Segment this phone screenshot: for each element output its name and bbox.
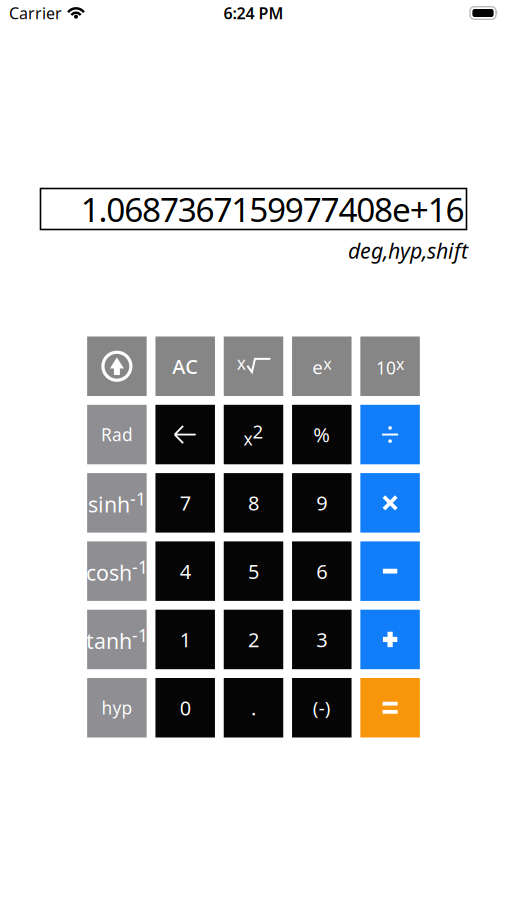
button[interactable]: x squared [224, 405, 283, 464]
button[interactable]: e to the x [292, 336, 351, 396]
staticText: 0 [180, 694, 191, 721]
staticText: . [251, 694, 256, 721]
button[interactable]: Inverse hyperbolic sine [87, 473, 147, 533]
button[interactable]: 4 [155, 541, 215, 601]
button[interactable]: Negate [292, 678, 351, 737]
button[interactable]: Minus [360, 541, 420, 601]
staticText: 6:24 PM [223, 2, 283, 24]
button[interactable]: 7 [155, 473, 215, 533]
button[interactable]: 8 [224, 473, 283, 533]
button[interactable]: 0 [155, 678, 215, 737]
button[interactable]: Multiply [360, 473, 420, 533]
staticText: ex [312, 353, 331, 379]
staticText: 7 [180, 490, 191, 516]
staticText: 3 [316, 626, 327, 653]
staticText: AC [172, 353, 198, 380]
button[interactable]: Root [224, 336, 283, 396]
staticText: 2 [248, 626, 259, 653]
button[interactable]: Inverse hyperbolic tangent [87, 610, 147, 669]
staticText: Carrier [9, 2, 62, 24]
staticText: sinh-1 [88, 487, 146, 518]
staticText: x2 [243, 419, 263, 450]
button[interactable]: Rad [87, 405, 147, 464]
button[interactable]: Divide [360, 405, 420, 464]
staticText: 6 [316, 558, 327, 584]
staticText: 10x [376, 353, 404, 379]
staticText: Rad [101, 423, 133, 446]
button[interactable]: 1 [155, 610, 215, 669]
staticText: 8 [248, 490, 259, 516]
staticText: hyp [101, 696, 132, 719]
staticText: x [237, 351, 246, 374]
staticText: 1 [180, 626, 191, 653]
staticText: 1.0687367159977408e+16 [81, 187, 464, 231]
staticText: deg,hyp,shift [348, 236, 468, 265]
staticText: 4 [180, 558, 191, 584]
button[interactable]: Shift [87, 336, 147, 396]
button[interactable]: Percent [292, 405, 351, 464]
button[interactable]: 2 [224, 610, 283, 669]
button[interactable]: Inverse hyperbolic cosine [87, 541, 147, 601]
button[interactable]: Hyperbolic [87, 678, 147, 737]
button[interactable]: 5 [224, 541, 283, 601]
button[interactable]: 3 [292, 610, 351, 669]
button[interactable]: Plus [360, 610, 420, 669]
staticText: % [313, 421, 330, 448]
button[interactable]: Equals [360, 678, 420, 737]
button[interactable]: AC [155, 336, 215, 396]
button[interactable]: 10 to the x [360, 336, 420, 396]
button[interactable]: Backspace [155, 405, 215, 464]
staticText: 5 [248, 558, 259, 584]
staticText: cosh-1 [86, 556, 148, 587]
staticText: (-) [313, 695, 331, 720]
staticText: tanh-1 [86, 624, 148, 655]
staticText: 9 [316, 490, 327, 516]
button[interactable]: 6 [292, 541, 351, 601]
button[interactable]: 9 [292, 473, 351, 533]
button[interactable]: Decimal point [224, 678, 283, 737]
